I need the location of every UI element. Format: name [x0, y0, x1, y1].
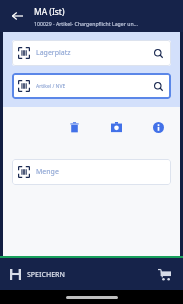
staticText: Artikel / NVE — [36, 83, 66, 90]
button[interactable]: Delete — [64, 117, 84, 137]
staticText: Lagerplatz — [36, 48, 71, 58]
button[interactable]: SPEICHERN — [8, 265, 67, 284]
button[interactable]: Cart — [153, 263, 175, 285]
button[interactable]: Menge — [12, 159, 171, 185]
button[interactable]: Camera — [106, 117, 126, 137]
staticText: Menge — [36, 167, 59, 177]
staticText: SPEICHERN — [27, 270, 65, 280]
staticText: MA (Ist) — [34, 6, 65, 18]
button[interactable]: Search — [151, 46, 165, 60]
button[interactable]: Search — [151, 79, 165, 93]
button[interactable]: Back — [6, 5, 28, 27]
staticText: 100029 · Artikel- Chargenpflicht Lager u… — [34, 20, 138, 27]
button[interactable]: Artikel / NVE — [12, 73, 171, 99]
button[interactable]: Info — [148, 117, 168, 137]
button[interactable]: Lagerplatz — [12, 40, 171, 66]
